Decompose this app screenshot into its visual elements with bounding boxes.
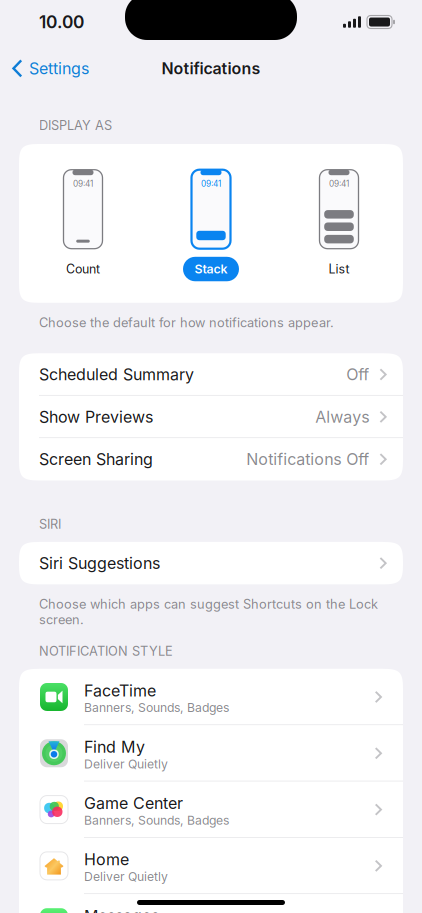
button[interactable]: 09:41 bbox=[275, 170, 403, 281]
staticText: Game Center bbox=[84, 793, 183, 813]
button[interactable]: FaceTime bbox=[19, 669, 403, 725]
staticText: Choose the default for how notifications… bbox=[39, 315, 334, 330]
staticText: List bbox=[328, 261, 349, 276]
button[interactable]: Find My bbox=[19, 725, 403, 781]
staticText: Scheduled Summary bbox=[39, 365, 194, 384]
staticText: Off bbox=[346, 365, 369, 384]
staticText: DISPLAY AS bbox=[39, 117, 112, 133]
staticText: Settings bbox=[29, 59, 89, 78]
staticText: 09:41 bbox=[73, 179, 93, 189]
staticText: Show Previews bbox=[39, 407, 153, 427]
staticText: 09:41 bbox=[329, 179, 349, 189]
staticText: Deliver Quietly bbox=[84, 757, 168, 771]
staticText: Screen Sharing bbox=[39, 450, 153, 469]
staticText: SIRI bbox=[39, 516, 61, 532]
staticText: Choose which apps can suggest Shortcuts … bbox=[39, 596, 378, 627]
staticText: Deliver Quietly bbox=[84, 869, 168, 884]
staticText: 09:41 bbox=[201, 179, 221, 189]
staticText: Notifications bbox=[161, 59, 260, 78]
button[interactable]: 09:41 bbox=[19, 170, 147, 281]
staticText: Home bbox=[84, 850, 129, 869]
staticText: NOTIFICATION STYLE bbox=[39, 643, 173, 659]
staticText: Notifications Off bbox=[246, 450, 369, 469]
button[interactable]: Scheduled Summary bbox=[19, 353, 403, 396]
staticText: Banners, Sounds, Badges bbox=[84, 700, 229, 715]
button[interactable]: Game Center bbox=[19, 781, 403, 838]
staticText: Stack bbox=[194, 261, 227, 276]
staticText: Count bbox=[66, 261, 100, 276]
button[interactable]: Messages bbox=[19, 894, 403, 913]
button[interactable]: 09:41 bbox=[147, 170, 275, 281]
staticText: Find My bbox=[84, 737, 145, 757]
staticText: Siri Suggestions bbox=[39, 553, 160, 573]
staticText: Always bbox=[315, 407, 369, 427]
staticText: Messages bbox=[84, 906, 159, 913]
button[interactable]: Show Previews bbox=[19, 396, 403, 438]
staticText: FaceTime bbox=[84, 681, 156, 700]
button[interactable]: Home bbox=[19, 838, 403, 894]
staticText: Banners, Sounds, Badges bbox=[84, 813, 229, 828]
button[interactable]: Siri Suggestions bbox=[19, 542, 403, 584]
button[interactable]: Settings bbox=[0, 53, 89, 84]
staticText: 10.00 bbox=[39, 11, 84, 32]
button[interactable]: Screen Sharing bbox=[19, 438, 403, 480]
